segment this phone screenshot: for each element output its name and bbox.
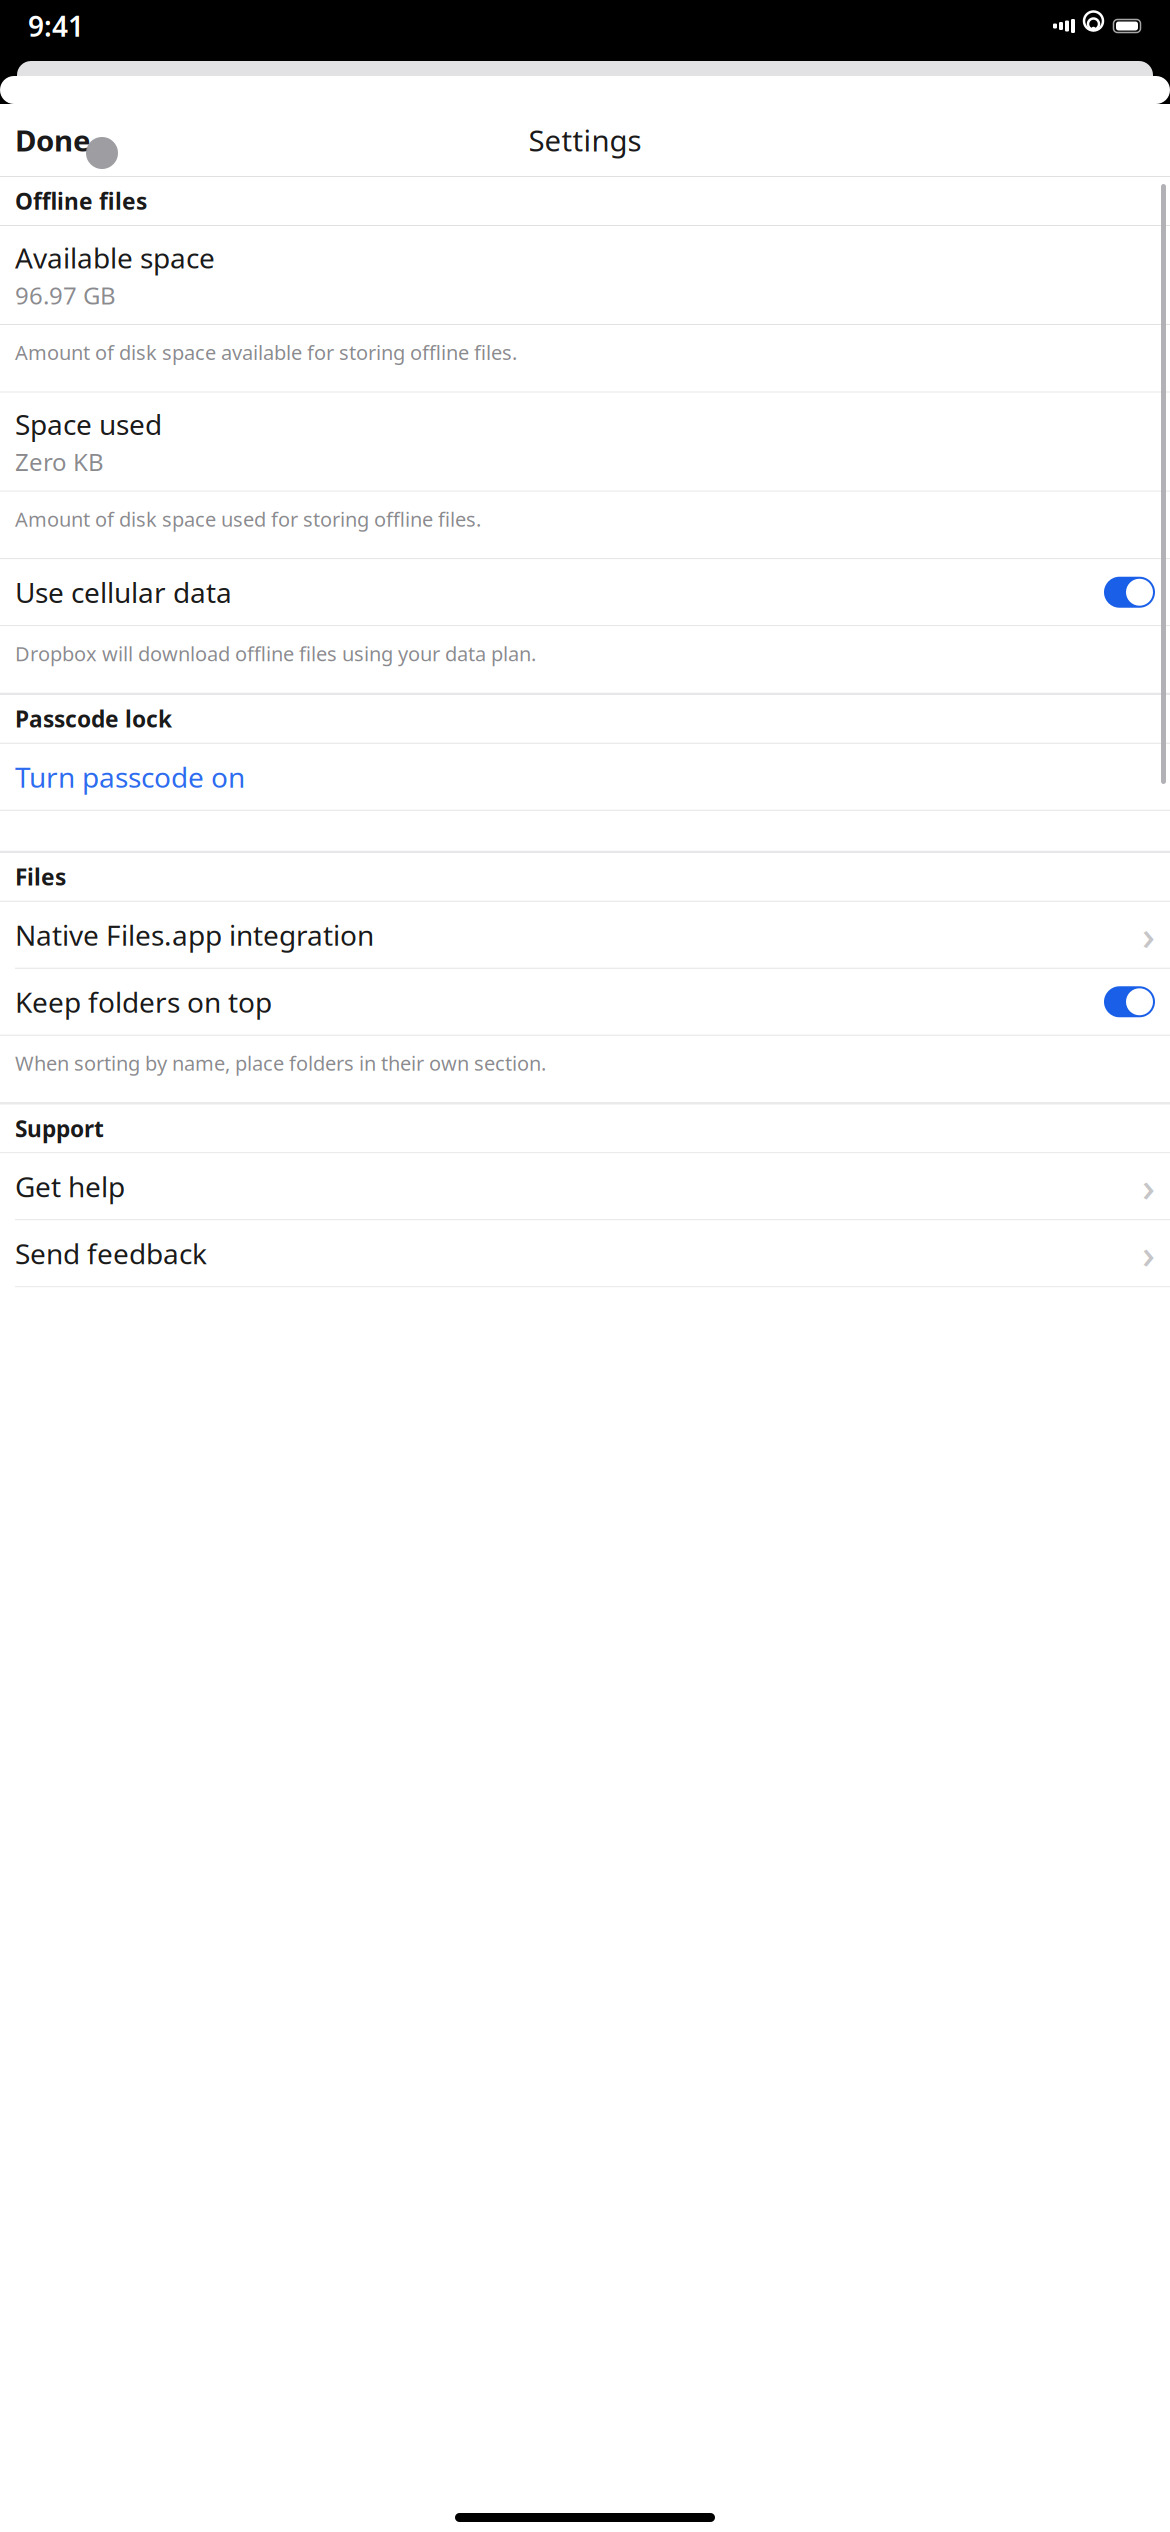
staticText: Support: [15, 1113, 104, 1143]
button[interactable]: Done: [0, 112, 106, 168]
staticText: Offline files: [15, 186, 147, 216]
button[interactable]: Keep folders on top: [0, 969, 1170, 1036]
staticText: Use cellular data: [15, 574, 232, 611]
staticText: Amount of disk space available for stori…: [15, 339, 517, 366]
button[interactable]: Space used: [0, 393, 1170, 492]
staticText: Native Files.app integration: [15, 916, 374, 953]
button[interactable]: Available space: [0, 226, 1170, 325]
button[interactable]: Native Files.app integration: [0, 902, 1170, 969]
staticText: Available space: [15, 239, 215, 276]
staticText: Send feedback: [15, 1235, 207, 1272]
staticText: Zero KB: [15, 446, 104, 478]
staticText: 96.97 GB: [15, 279, 116, 311]
staticText: Dropbox will download offline files usin…: [15, 640, 536, 667]
staticText: Files: [15, 862, 66, 892]
staticText: ›: [1142, 1227, 1155, 1280]
staticText: Passcode lock: [15, 704, 172, 734]
staticText: Settings: [528, 120, 641, 159]
button[interactable]: Use cellular data: [0, 559, 1170, 626]
staticText: ›: [1142, 908, 1155, 961]
staticText: Get help: [15, 1168, 125, 1205]
staticText: 9:41: [28, 7, 84, 45]
staticText: Turn passcode on: [15, 758, 245, 795]
staticText: Keep folders on top: [15, 983, 272, 1020]
staticText: Done: [15, 120, 91, 159]
staticText: ›: [1142, 1160, 1155, 1213]
button[interactable]: Send feedback: [0, 1220, 1170, 1287]
staticText: When sorting by name, place folders in t…: [15, 1050, 546, 1076]
staticText: Space used: [15, 406, 162, 443]
staticText: Amount of disk space used for storing of…: [15, 506, 481, 532]
button[interactable]: Turn passcode on: [0, 744, 1170, 811]
button[interactable]: Get help: [0, 1153, 1170, 1220]
